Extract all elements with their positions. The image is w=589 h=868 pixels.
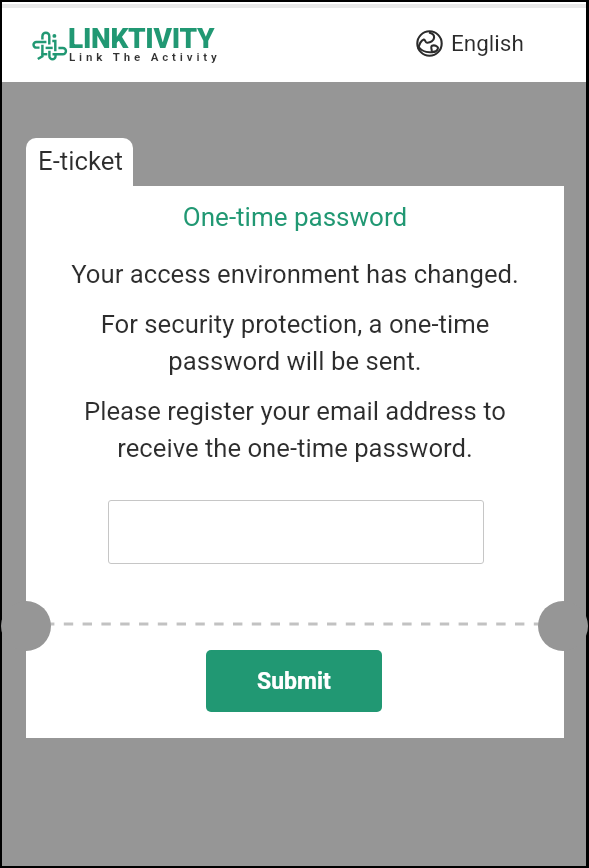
staticText: Your access environment has changed.	[26, 259, 564, 289]
staticText: E-ticket	[38, 146, 123, 176]
staticText: English	[451, 30, 524, 56]
staticText: Please register your email address to re…	[56, 396, 534, 464]
button[interactable]: Submit	[206, 650, 382, 712]
other: Language	[416, 30, 443, 57]
staticText: Link The Activity	[69, 50, 221, 63]
staticText: LINKTIVITY	[68, 22, 215, 55]
button[interactable]: Language	[408, 22, 535, 62]
button[interactable]	[31, 27, 67, 65]
button[interactable]	[108, 500, 484, 564]
staticText: One-time password	[26, 202, 564, 232]
button[interactable]: E-ticket	[26, 138, 133, 188]
staticText: Submit	[257, 668, 331, 695]
staticText: For security protection, a one-time pass…	[74, 309, 516, 377]
